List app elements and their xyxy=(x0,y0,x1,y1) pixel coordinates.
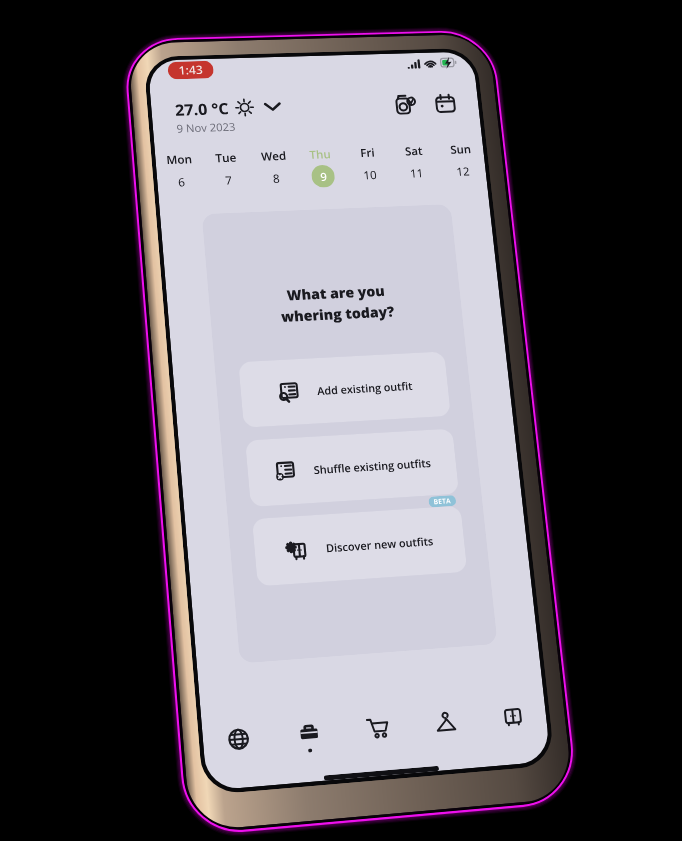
staticText: Wed xyxy=(260,148,287,163)
button[interactable]: Thu xyxy=(296,146,347,188)
button[interactable]: Discover new outfits xyxy=(252,506,467,586)
button[interactable]: Wed xyxy=(249,147,300,190)
staticText: Sat xyxy=(404,143,424,158)
staticText: 10 xyxy=(363,167,378,182)
button[interactable]: Shop xyxy=(341,704,413,751)
button[interactable]: Mon xyxy=(155,151,206,194)
button[interactable]: Laundry xyxy=(392,93,417,116)
staticText: 11 xyxy=(409,165,424,180)
button[interactable]: Add existing outfit xyxy=(238,351,451,428)
staticText: Fri xyxy=(359,144,375,160)
staticText: Discover new outfits xyxy=(325,533,434,555)
button[interactable]: Tue xyxy=(202,149,252,192)
staticText: Tue xyxy=(215,149,237,165)
staticText: Mon xyxy=(166,151,193,167)
button[interactable]: Wardrobe xyxy=(272,709,345,756)
staticText: 12 xyxy=(456,163,470,179)
button[interactable]: Shuffle existing outfits xyxy=(245,428,459,507)
button[interactable]: Fri xyxy=(343,144,394,187)
staticText: BETA xyxy=(433,496,452,507)
staticText: Add existing outfit xyxy=(316,378,413,398)
button[interactable]: Explore xyxy=(201,715,276,762)
staticText: 9 Nov 2023 xyxy=(176,119,237,136)
staticText: 27.0 °C xyxy=(174,97,229,119)
staticText: 6 xyxy=(177,174,186,189)
button[interactable]: Outfits xyxy=(409,699,481,745)
button[interactable]: Closet xyxy=(477,693,548,739)
staticText: Shuffle existing outfits xyxy=(313,455,432,477)
staticText: whering today? xyxy=(280,302,396,327)
button[interactable]: Calendar xyxy=(434,93,457,114)
staticText: Sun xyxy=(449,141,472,157)
staticText: What are you xyxy=(286,282,386,305)
button[interactable]: Sat xyxy=(390,142,441,185)
staticText: 9 xyxy=(319,169,328,184)
staticText: 8 xyxy=(272,170,280,186)
staticText: 7 xyxy=(224,172,233,187)
button[interactable]: Sun xyxy=(436,141,487,183)
staticText: Thu xyxy=(309,146,332,162)
staticText: 1:43 xyxy=(178,62,204,78)
